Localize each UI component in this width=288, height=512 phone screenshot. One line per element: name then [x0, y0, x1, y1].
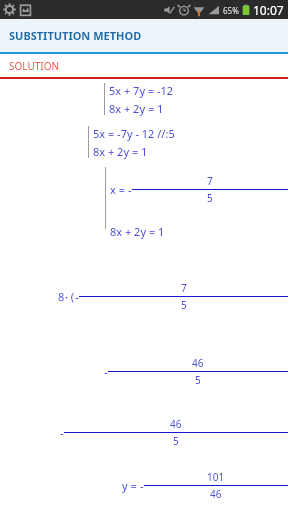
staticText: 65% [223, 5, 239, 16]
staticText: - [104, 364, 108, 379]
staticText: 8x + 2y = 1 [109, 101, 164, 116]
staticText: 7 [207, 174, 213, 188]
staticText: 5x = -7y - 12 //:5 [93, 126, 175, 141]
staticText: 8 [58, 289, 65, 304]
staticText: 46 [192, 356, 204, 370]
staticText: - [140, 478, 144, 493]
staticText: 5x + 7y = -12 [109, 83, 174, 98]
staticText: 5 [207, 191, 213, 205]
staticText: 46 [210, 487, 222, 501]
staticText: SUBSTITUTION METHOD [9, 28, 142, 43]
staticText: 46 [170, 417, 182, 431]
staticText: 8x + 2y = 1 [93, 144, 148, 159]
button[interactable]: SUBSTITUTION METHOD [0, 19, 288, 52]
staticText: 5 [173, 434, 179, 448]
staticText: 7 [181, 281, 187, 295]
staticText: - [128, 182, 132, 197]
staticText: 10:07 [253, 2, 284, 18]
staticText: ( [68, 289, 75, 304]
staticText: y = [122, 478, 140, 493]
staticText: 8x + 2y = 1 [110, 224, 165, 239]
staticText: x = [110, 182, 128, 197]
staticText: - [60, 425, 64, 440]
staticText: SOLUTION [9, 59, 60, 73]
staticText: - [75, 289, 79, 304]
staticText: 101 [207, 470, 225, 484]
staticText: · [65, 289, 68, 304]
staticText: 5 [195, 373, 201, 387]
staticText: 5 [181, 298, 187, 312]
